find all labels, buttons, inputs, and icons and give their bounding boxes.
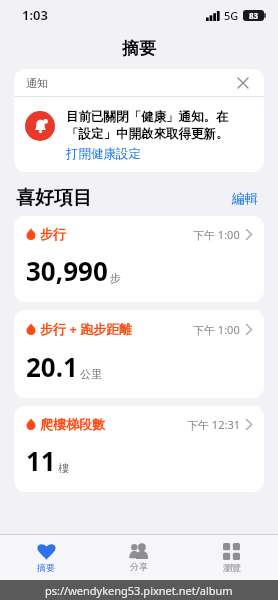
button[interactable]: 打開健康設定 [66,146,141,162]
staticText: 喜好項目 [16,186,92,210]
staticText: 步行 [40,226,66,242]
staticText: 瀏覽 [223,562,241,573]
button[interactable]: 編輯 [228,186,262,210]
staticText: 編輯 [232,190,258,206]
button[interactable]: 步行 [14,216,264,302]
button[interactable]: 分享 [92,535,185,580]
button[interactable]: 步行 + 跑步距離 [14,310,264,398]
staticText: 公里 [80,367,102,381]
staticText: 打開健康設定 [66,146,141,162]
staticText: 下午 1:00 [193,227,240,242]
staticText: 11 [26,443,56,478]
button[interactable]: 摘要 [0,535,92,580]
staticText: 摘要 [122,38,156,59]
staticText: ps://wendykeng53.pixnet.net/album [45,583,233,598]
staticText: 20.1 [26,349,78,384]
staticText: 步 [110,271,121,285]
staticText: 通知 [26,76,48,90]
staticText: 下午 1:00 [193,322,240,337]
staticText: 樓 [58,461,69,475]
staticText: 5G [224,8,239,23]
button[interactable]: 爬樓梯段數 [14,406,264,492]
button[interactable]: 關閉 [234,74,252,92]
staticText: 下午 12:31 [187,417,240,432]
staticText: 分享 [130,561,148,572]
staticText: 爬樓梯段數 [40,416,105,432]
staticText: 步行 + 跑步距離 [40,320,133,338]
staticText: 30,990 [26,253,108,288]
staticText: 83 [249,10,259,21]
button[interactable]: 瀏覽 [185,535,278,580]
staticText: 目前已關閉「健康」通知。在「設定」中開啟來取得更新。 [66,109,252,141]
staticText: 摘要 [37,562,55,573]
staticText: 1:03 [22,6,48,24]
